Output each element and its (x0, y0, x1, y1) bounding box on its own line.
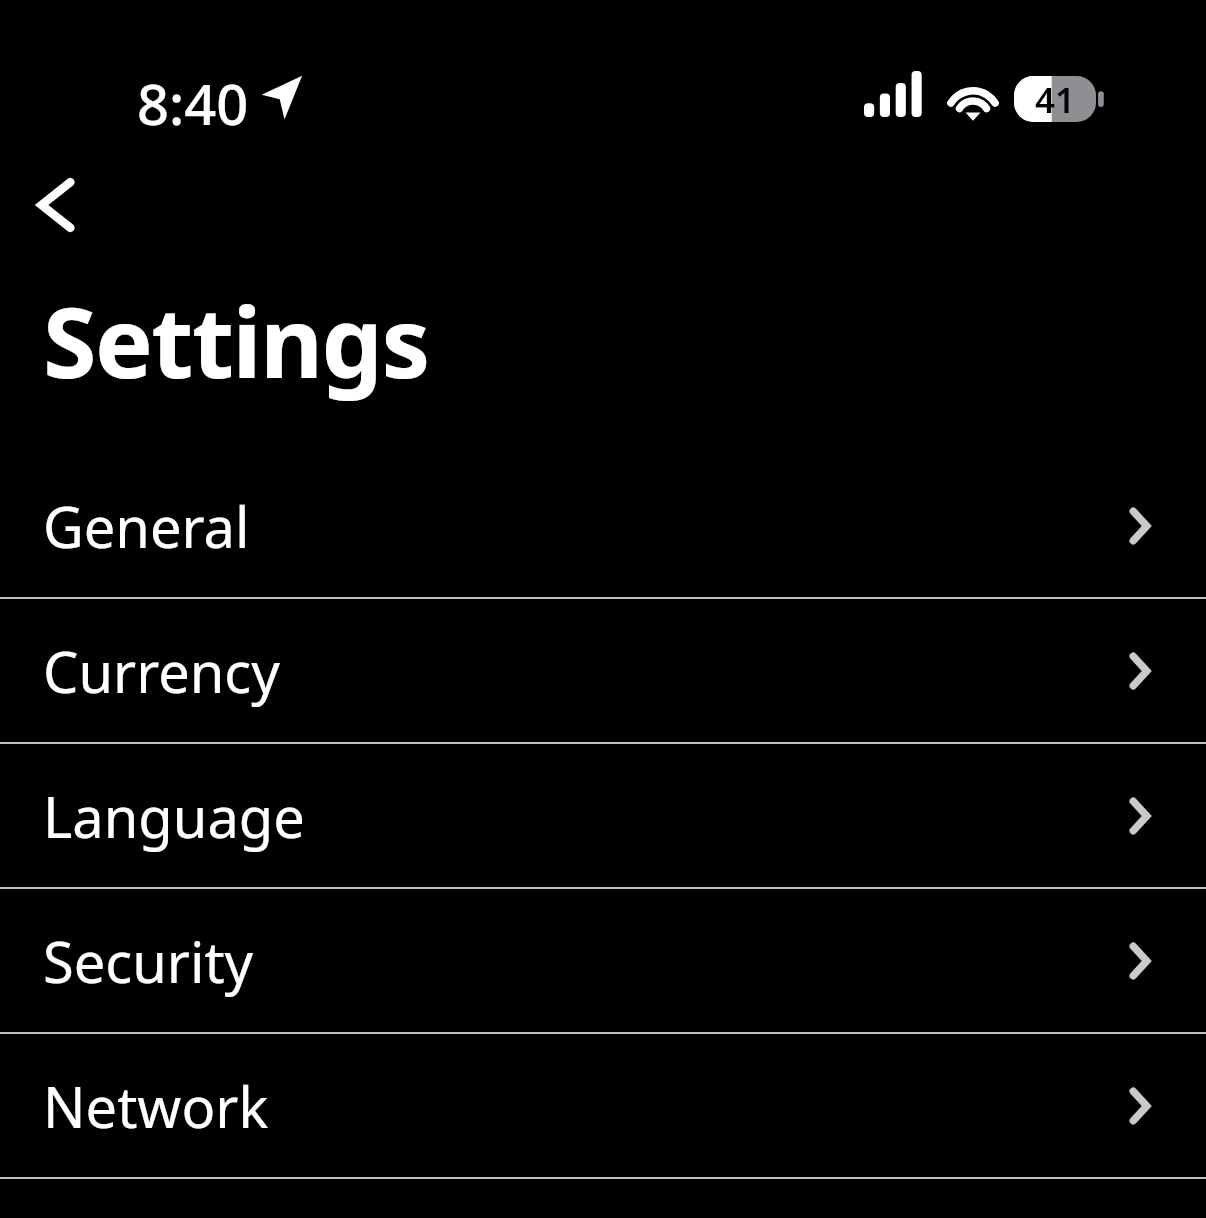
button[interactable]: Security (0, 889, 1206, 1032)
staticText: 41 (1014, 76, 1096, 122)
button[interactable]: Language (0, 744, 1206, 887)
button[interactable]: Back (4, 150, 108, 260)
staticText: 8:40 (137, 65, 249, 141)
staticText: Security (43, 923, 254, 999)
button[interactable]: Network (0, 1034, 1206, 1177)
staticText: Settings (43, 274, 429, 406)
staticText: Currency (43, 633, 280, 709)
staticText: Network (43, 1068, 269, 1144)
staticText: Language (43, 778, 305, 854)
staticText: General (43, 488, 250, 564)
button[interactable]: Currency (0, 599, 1206, 742)
button[interactable]: General (0, 454, 1206, 597)
